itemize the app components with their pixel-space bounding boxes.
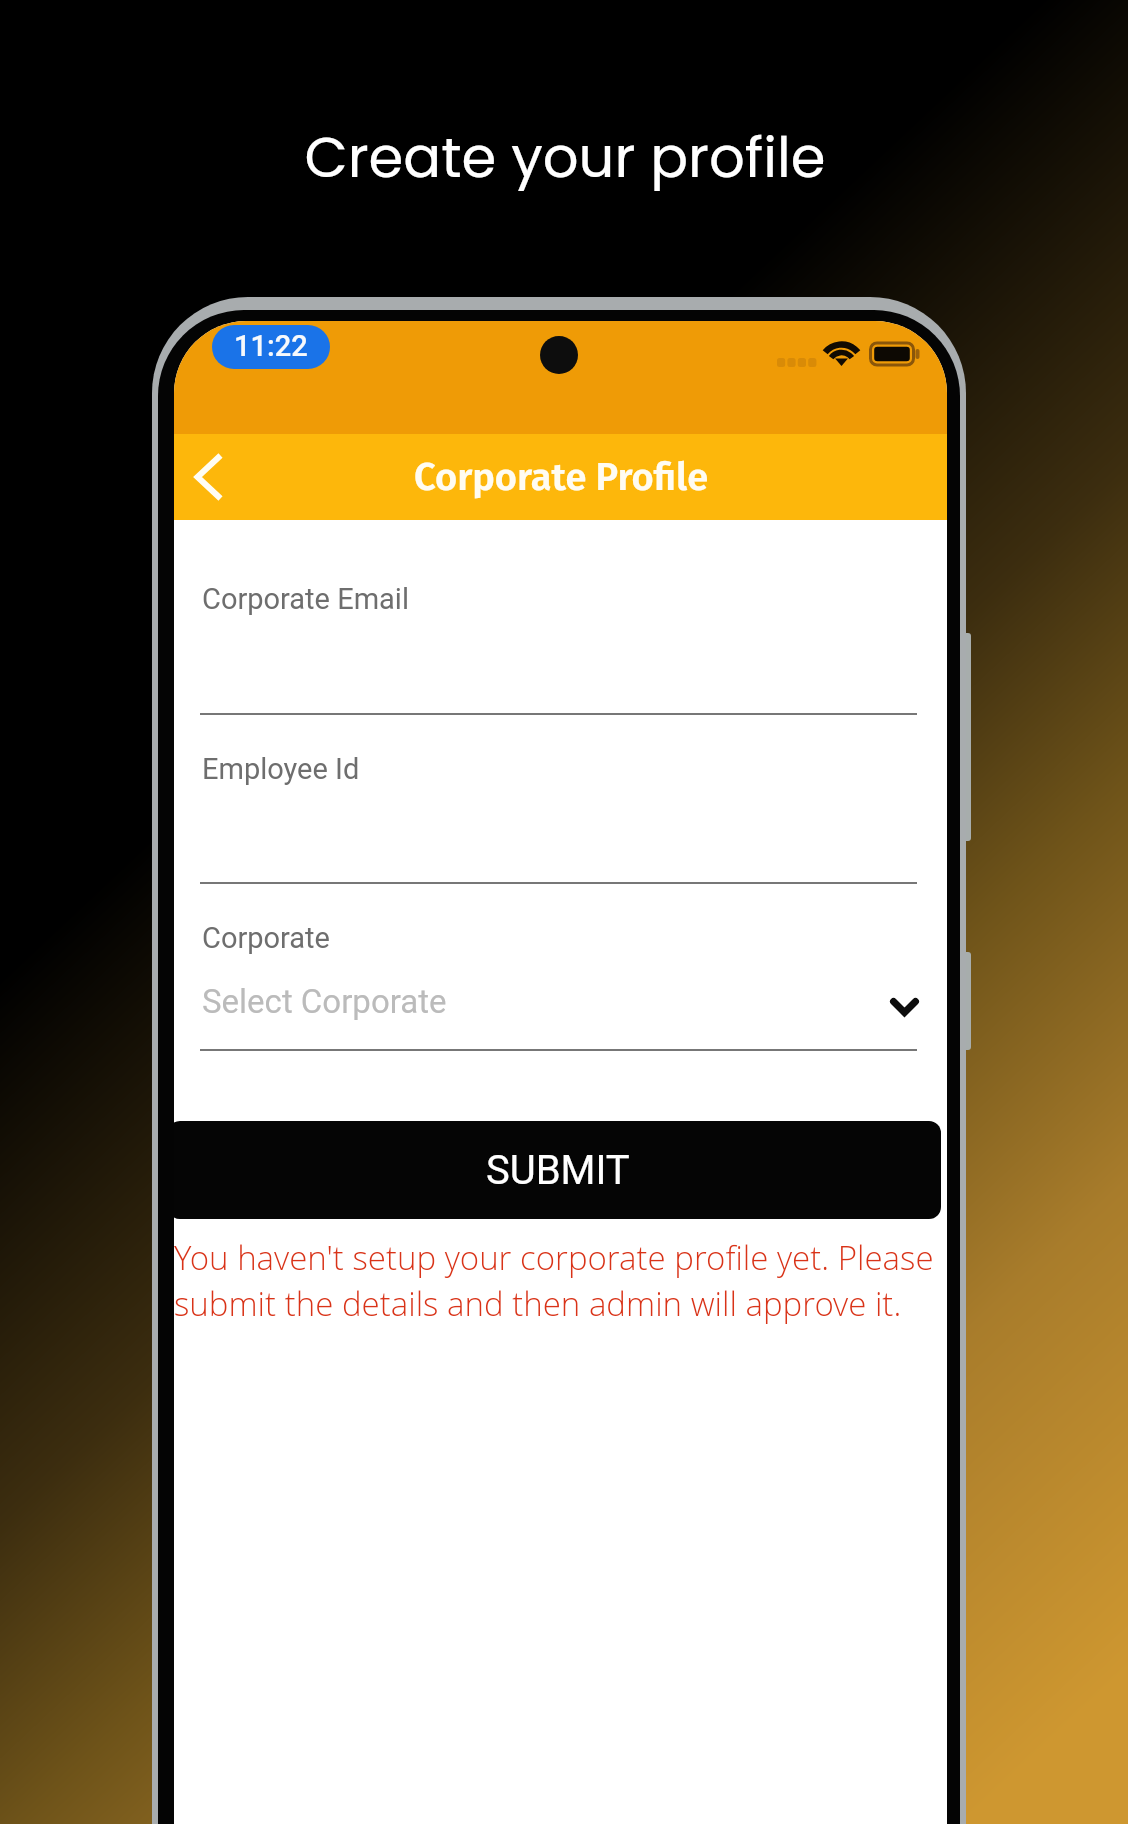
staticText: 11:22 (234, 329, 308, 363)
button[interactable]: Back (174, 434, 260, 520)
button[interactable]: SUBMIT (174, 1121, 941, 1219)
staticText: Corporate Email (202, 582, 409, 616)
staticText: Corporate Profile (414, 454, 709, 500)
staticText: Employee Id (202, 752, 360, 786)
staticText: Select Corporate (202, 982, 447, 1021)
staticText: Corporate (202, 921, 330, 955)
button[interactable]: Select Corporate (202, 973, 919, 1043)
staticText: SUBMIT (486, 1147, 630, 1194)
staticText: You haven't setup your corporate profile… (174, 1235, 947, 1326)
staticText: Create your profile (1, 118, 1128, 196)
